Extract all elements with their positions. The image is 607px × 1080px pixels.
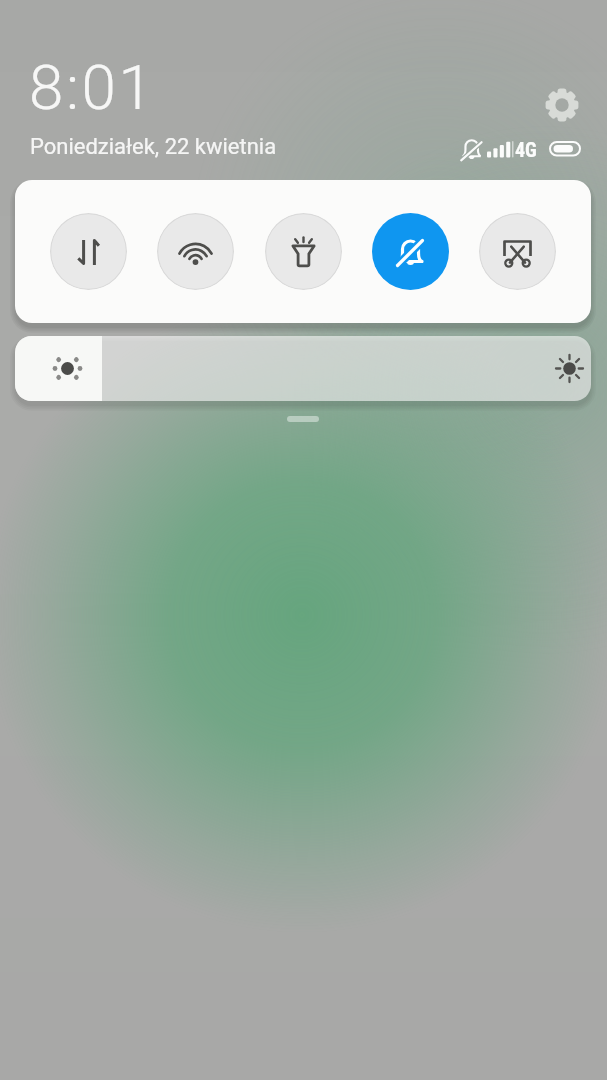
staticText: Poniedziałek, 22 kwietnia — [30, 134, 277, 160]
button[interactable] — [540, 83, 584, 127]
button[interactable] — [265, 213, 342, 290]
button[interactable] — [50, 213, 127, 290]
button[interactable] — [157, 213, 234, 290]
button[interactable] — [372, 213, 449, 290]
button[interactable] — [287, 416, 319, 422]
staticText: 8:01 — [29, 51, 156, 124]
button[interactable] — [479, 213, 556, 290]
staticText: 4G — [515, 138, 537, 161]
button[interactable] — [15, 336, 591, 401]
